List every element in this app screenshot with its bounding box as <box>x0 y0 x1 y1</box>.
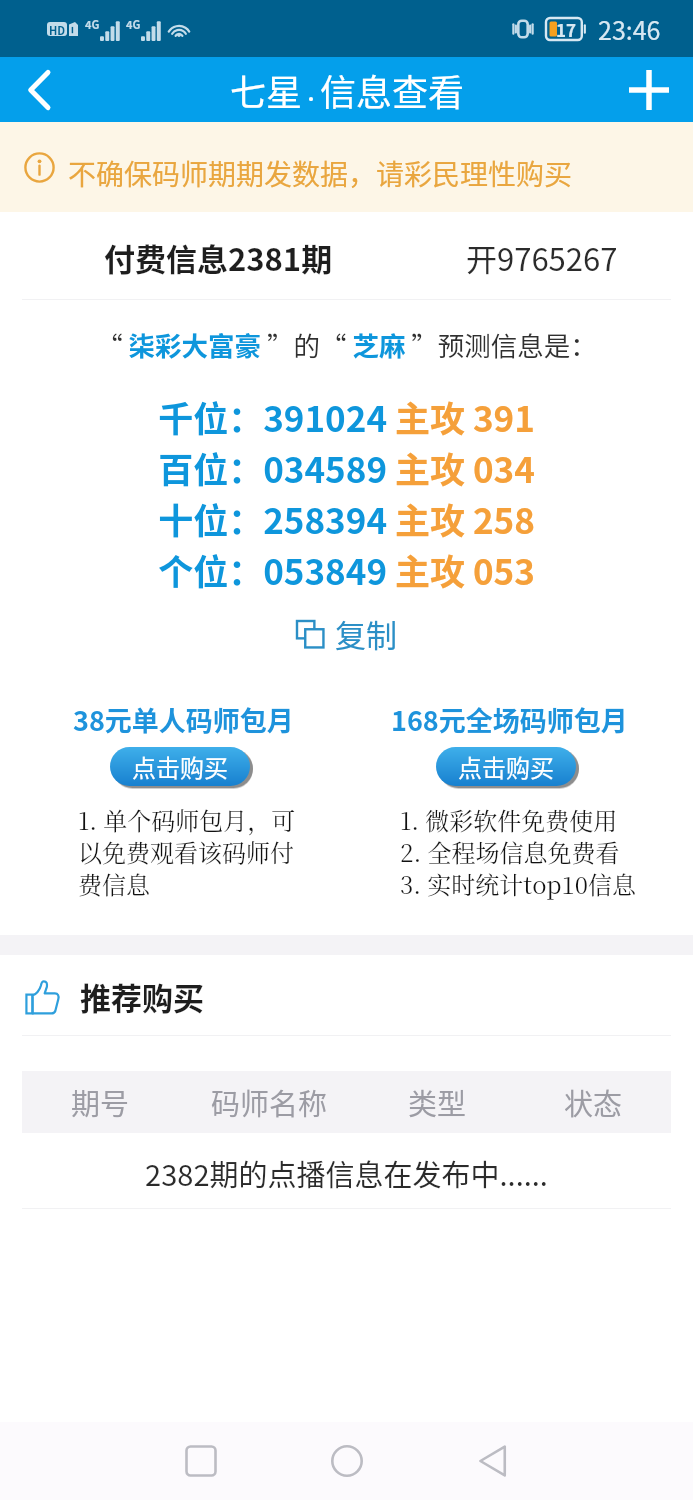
staticText: HD <box>49 22 66 36</box>
staticText: 2382期的点播信息在发布中...... <box>0 1152 693 1194</box>
button[interactable]: 点击购买 <box>110 747 250 786</box>
staticText: 推荐购买 <box>80 974 204 1019</box>
button[interactable]: 复制 <box>296 605 397 662</box>
staticText: 七星·信息查看 <box>230 64 464 116</box>
staticText: 期号 <box>71 1081 130 1123</box>
staticText: 付费信息2381期 <box>104 235 333 280</box>
staticText: 23:46 <box>598 11 661 47</box>
staticText: 不确保码师期期发数据，请彩民理性购买 <box>68 153 573 194</box>
button[interactable]: Back <box>450 1422 536 1500</box>
button[interactable]: Home <box>304 1422 390 1500</box>
staticText: 十位：258394 主攻 258 <box>0 493 693 544</box>
staticText: 1. 单个码师包月，可 以免费观看该码师付 费信息 <box>78 802 367 900</box>
button[interactable]: Back <box>0 57 77 122</box>
staticText: 168元全场码师包月 <box>391 700 628 739</box>
button[interactable]: Add <box>605 57 693 122</box>
staticText: “ 柒彩大富豪 ”的“ 芝麻 ”预测信息是： <box>0 325 693 363</box>
staticText: 17 <box>556 17 577 41</box>
staticText: 状态 <box>564 1081 623 1123</box>
button[interactable]: Recents <box>158 1422 244 1500</box>
staticText: 点击购买 <box>132 749 228 784</box>
staticText: 码师名称 <box>211 1081 328 1123</box>
staticText: 38元单人码师包月 <box>73 700 294 739</box>
staticText: 4G <box>126 16 141 32</box>
staticText: 4G <box>85 16 100 32</box>
staticText: 千位：391024 主攻 391 <box>0 391 693 442</box>
staticText: 1. 微彩软件免费使用 2. 全程场信息免费看 3. 实时统计top10信息 <box>400 802 693 900</box>
staticText: 类型 <box>408 1081 467 1123</box>
staticText: 点击购买 <box>458 749 554 784</box>
staticText: 百位：034589 主攻 034 <box>0 442 693 493</box>
staticText: 个位：053849 主攻 053 <box>0 544 693 595</box>
staticText: 复制 <box>335 611 397 656</box>
staticText: 开9765267 <box>466 235 618 280</box>
button[interactable]: 点击购买 <box>436 747 576 786</box>
